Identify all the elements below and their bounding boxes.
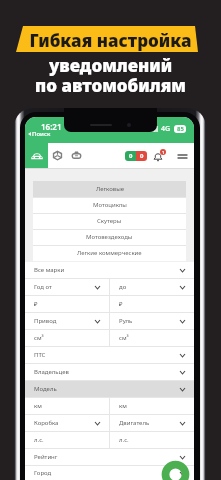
- button[interactable]: км: [110, 398, 194, 414]
- button[interactable]: Руль: [110, 313, 194, 329]
- button[interactable]: Привод: [25, 313, 109, 329]
- button[interactable]: Город: [25, 466, 194, 480]
- button[interactable]: ПТС: [25, 347, 194, 363]
- button[interactable]: ₽: [25, 296, 109, 312]
- staticText: Двигатель: [119, 419, 150, 427]
- staticText: Владельцев: [34, 368, 69, 376]
- button[interactable]: Легковые: [33, 181, 186, 197]
- staticText: см³: [119, 334, 129, 342]
- button[interactable]: ₽: [110, 296, 194, 312]
- staticText: Легкие коммерческие: [77, 249, 142, 257]
- button[interactable]: Коробка: [25, 415, 109, 431]
- staticText: Рейтинг: [34, 453, 58, 461]
- staticText: Гибкая настройка: [0, 29, 221, 52]
- staticText: Скутеры: [97, 217, 122, 225]
- staticText: ПТС: [34, 351, 46, 359]
- staticText: 4G: [161, 124, 171, 134]
- staticText: Легковые: [96, 185, 124, 193]
- button[interactable]: Подобрать: [163, 462, 188, 480]
- staticText: Коробка: [34, 419, 59, 427]
- staticText: км: [119, 402, 127, 410]
- staticText: Год от: [34, 283, 52, 291]
- staticText: км: [34, 402, 42, 410]
- button[interactable]: л.с.: [110, 432, 194, 448]
- button[interactable]: Модель: [25, 381, 194, 397]
- button[interactable]: Мотоциклы: [48, 143, 66, 168]
- staticText: 1: [162, 150, 165, 155]
- button[interactable]: Меню: [175, 149, 189, 163]
- button[interactable]: Коммерческие: [66, 143, 86, 168]
- staticText: ₽: [119, 300, 123, 308]
- staticText: Привод: [34, 317, 57, 325]
- button[interactable]: Рейтинг: [25, 449, 194, 465]
- button[interactable]: до: [110, 279, 194, 295]
- staticText: уведомлений: [0, 54, 221, 77]
- staticText: 85: [177, 125, 184, 133]
- staticText: см³: [34, 334, 44, 342]
- button[interactable]: км: [25, 398, 109, 414]
- button[interactable]: Сравнение: [125, 151, 147, 161]
- staticText: л.с.: [119, 436, 129, 444]
- staticText: Мотовездеходы: [86, 233, 133, 241]
- button[interactable]: Легковые: [25, 143, 48, 168]
- staticText: 16:21: [41, 121, 62, 132]
- staticText: до: [119, 283, 127, 291]
- staticText: Город: [34, 469, 52, 477]
- staticText: Модель: [34, 385, 57, 393]
- button[interactable]: Скутеры: [33, 213, 186, 229]
- button[interactable]: Мотовездеходы: [33, 229, 186, 245]
- staticText: ₽: [34, 300, 38, 308]
- button[interactable]: см³: [110, 330, 194, 346]
- button[interactable]: Все марки: [25, 262, 194, 278]
- staticText: Все марки: [34, 266, 65, 274]
- staticText: Руль: [119, 317, 133, 325]
- staticText: 0: [129, 152, 133, 160]
- button[interactable]: Легкие коммерческие: [33, 245, 186, 261]
- staticText: 0: [140, 152, 144, 160]
- staticText: по автомобилям: [0, 74, 221, 97]
- staticText: Мотоциклы: [93, 201, 127, 209]
- button[interactable]: л.с.: [25, 432, 109, 448]
- button[interactable]: Двигатель: [110, 415, 194, 431]
- button[interactable]: Мотоциклы: [33, 197, 186, 213]
- button[interactable]: Владельцев: [25, 364, 194, 380]
- staticText: Поиск: [32, 130, 51, 138]
- button[interactable]: Год от: [25, 279, 109, 295]
- button[interactable]: см³: [25, 330, 109, 346]
- staticText: л.с.: [34, 436, 44, 444]
- button[interactable]: Уведомления: [153, 149, 166, 162]
